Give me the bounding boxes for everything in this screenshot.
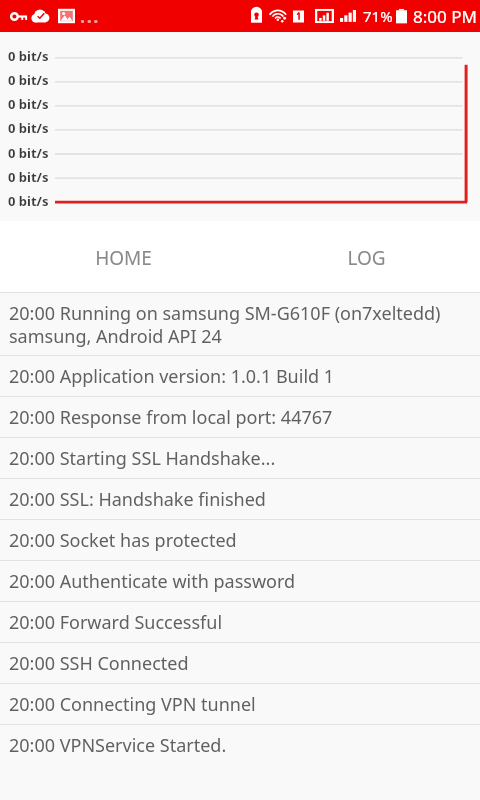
staticText: 20:00 Connecting VPN tunnel — [9, 692, 256, 717]
staticText: LOG — [347, 245, 386, 271]
staticText: 20:00 Starting SSL Handshake... — [9, 446, 276, 471]
button[interactable]: HOME — [0, 221, 240, 292]
staticText: ... — [80, 4, 100, 29]
other: SIM 1 — [293, 9, 304, 24]
staticText: 20:00 Application version: 1.0.1 Build 1 — [9, 364, 335, 389]
staticText: 20:00 Socket has protected — [9, 528, 237, 553]
button[interactable]: 20:00 SSL: Handshake finished — [0, 479, 480, 519]
button[interactable]: 20:00 Authenticate with password — [0, 561, 480, 601]
button[interactable]: 20:00 Forward Successful — [0, 602, 480, 642]
staticText: HOME — [95, 245, 152, 271]
button[interactable]: 20:00 Running on samsung SM-G610F (on7xe… — [0, 293, 480, 355]
staticText: 0 bit/s — [8, 71, 49, 89]
staticText: 20:00 Response from local port: 44767 — [9, 405, 333, 430]
other: Wi-Fi — [270, 9, 287, 23]
other: Screenshot saved — [58, 8, 75, 24]
button[interactable]: 20:00 Response from local port: 44767 — [0, 397, 480, 437]
other: Signal strength — [340, 9, 356, 23]
staticText: 0 bit/s — [8, 192, 49, 210]
staticText: 8:00 PM — [413, 5, 477, 28]
other: Battery 71 percent — [396, 8, 407, 24]
staticText: 0 bit/s — [8, 47, 49, 65]
staticText: 20:00 Running on samsung SM-G610F (on7xe… — [9, 301, 441, 348]
staticText: 20:00 SSH Connected — [9, 651, 189, 676]
button[interactable]: LOG — [240, 221, 480, 292]
button[interactable]: 20:00 VPNService Started. — [0, 725, 480, 765]
button[interactable]: 20:00 Connecting VPN tunnel — [0, 684, 480, 724]
other: VPN active — [10, 11, 27, 22]
button[interactable]: 20:00 SSH Connected — [0, 643, 480, 683]
staticText: 20:00 Authenticate with password — [9, 569, 296, 594]
staticText: 0 bit/s — [8, 119, 49, 137]
button[interactable]: 20:00 Starting SSL Handshake... — [0, 438, 480, 478]
staticText: 0 bit/s — [8, 168, 49, 186]
staticText: 20:00 Forward Successful — [9, 610, 223, 635]
button[interactable]: 20:00 Application version: 1.0.1 Build 1 — [0, 356, 480, 396]
staticText: 20:00 SSL: Handshake finished — [9, 487, 266, 512]
other: Secure — [251, 8, 262, 24]
staticText: 20:00 VPNService Started. — [9, 733, 227, 758]
other: Cloud sync — [32, 9, 49, 23]
staticText: 0 bit/s — [8, 144, 49, 162]
staticText: 71% — [363, 6, 393, 26]
staticText: 0 bit/s — [8, 95, 49, 113]
other: Mobile data — [315, 8, 334, 24]
button[interactable]: 20:00 Socket has protected — [0, 520, 480, 560]
